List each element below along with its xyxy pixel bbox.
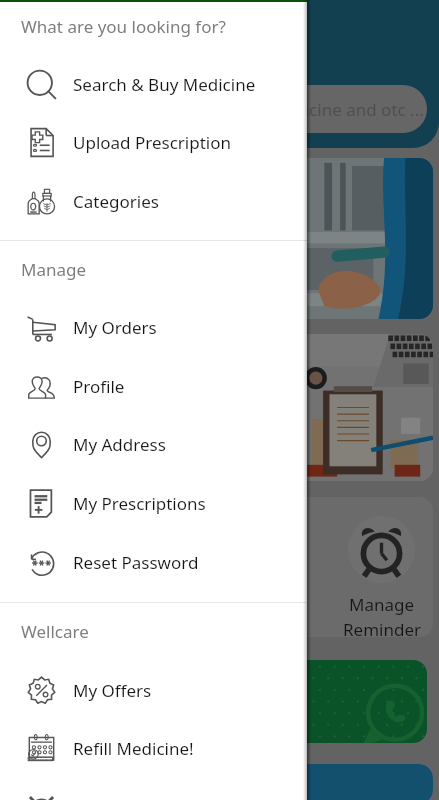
button[interactable]: Refill Medicine!: [0, 719, 307, 778]
staticText: My Prescriptions: [73, 492, 206, 515]
staticText: My Orders: [73, 316, 157, 339]
button[interactable]: My Orders: [0, 298, 307, 357]
staticText: Categories: [73, 190, 159, 213]
staticText: Profile: [73, 375, 125, 398]
button[interactable]: Search for medicine and otc ...: [16, 85, 427, 133]
button[interactable]: Reminder: [0, 778, 307, 800]
staticText: Reset Password: [73, 551, 199, 574]
staticText: My Offers: [73, 679, 152, 702]
staticText: Manage: [349, 593, 415, 616]
button[interactable]: Upload Prescription: [0, 113, 307, 172]
button[interactable]: Search & Buy Medicine: [0, 55, 307, 114]
staticText: Manage: [21, 258, 87, 281]
staticText: Reminder: [343, 618, 422, 637]
button[interactable]: My Address: [0, 415, 307, 474]
button[interactable]: Reset Password: [0, 533, 307, 592]
button[interactable]: Profile: [0, 357, 307, 416]
staticText: My Address: [73, 433, 166, 456]
staticText: Refill Medicine!: [73, 737, 194, 760]
staticText: Order on whatsapp: [29, 688, 221, 715]
button[interactable]: My Offers: [0, 661, 307, 720]
button[interactable]: My Prescriptions: [0, 474, 307, 533]
staticText: Search & Buy Medicine: [73, 73, 256, 96]
staticText: Upload Prescription: [73, 131, 231, 154]
button[interactable]: Categories: [0, 172, 307, 231]
staticText: Search for medicine and otc ...: [183, 98, 424, 121]
staticText: What are you looking for?: [21, 15, 226, 38]
staticText: Wellcare: [21, 620, 89, 643]
